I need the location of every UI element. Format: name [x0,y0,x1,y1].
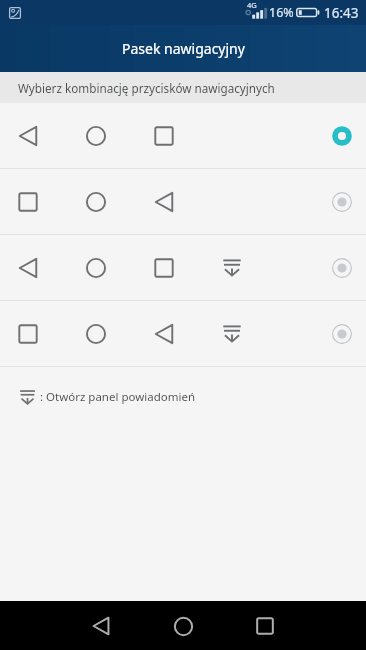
staticText: 4G [247,0,257,10]
button[interactable]: Ostatnie, Ekran główny, Wstecz, Panel po… [0,301,366,367]
button[interactable]: Wstecz, Ekran główny, Ostatnie, Panel po… [0,235,366,301]
staticText: 16:43 [324,4,359,22]
staticText: : Otwórz panel powiadomień [40,389,196,405]
button[interactable]: Wstecz, Ekran główny, Ostatnie [0,103,366,169]
staticText: Pasek nawigacyjny [122,39,245,58]
staticText: Wybierz kombinację przycisków nawigacyjn… [18,80,275,96]
staticText: 16% [269,4,294,21]
button[interactable]: Recents [241,602,289,650]
button[interactable]: Home [159,602,207,650]
button[interactable]: Ostatnie, Ekran główny, Wstecz [0,169,366,235]
button[interactable]: Back [77,602,125,650]
